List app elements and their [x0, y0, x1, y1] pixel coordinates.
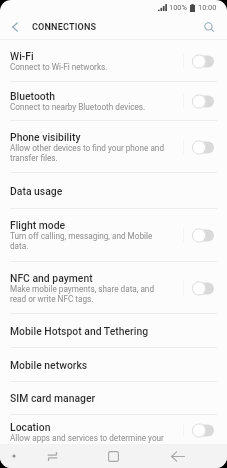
button[interactable]: Phone visibility [183, 135, 214, 159]
staticText: Flight mode [10, 219, 66, 231]
button[interactable]: Search [196, 14, 222, 40]
staticText: Bluetooth [10, 90, 55, 102]
button[interactable]: SIM card manager [0, 382, 227, 414]
staticText: Data usage [10, 185, 63, 197]
staticText: Location [10, 421, 51, 433]
button[interactable]: NFC and payment [183, 276, 214, 300]
staticText: Turn off calling, messaging, and Mobile … [10, 231, 169, 251]
button[interactable]: Location [183, 418, 214, 442]
button[interactable]: Flight mode [0, 209, 227, 261]
staticText: Mobile networks [10, 359, 88, 371]
button[interactable]: NFC and payment [0, 262, 227, 313]
staticText: NFC and payment [10, 272, 93, 284]
button[interactable]: Navigate up [2, 14, 28, 40]
staticText: Connect to Wi-Fi networks. [10, 62, 108, 72]
button[interactable]: Wi-Fi [183, 49, 214, 73]
button[interactable]: Mobile networks [0, 348, 227, 381]
staticText: Allow other devices to find your phone a… [10, 143, 169, 163]
button[interactable]: Back [166, 444, 190, 468]
button[interactable]: Bluetooth [183, 89, 214, 113]
button[interactable]: Bluetooth [0, 82, 227, 120]
button[interactable]: Mobile Hotspot and Tethering [0, 314, 227, 347]
button[interactable]: Flight mode [183, 223, 214, 247]
button[interactable]: Location [0, 415, 227, 444]
staticText: Wi-Fi [10, 50, 34, 62]
button[interactable]: Data usage [0, 173, 227, 208]
button[interactable]: Phone visibility [0, 121, 227, 172]
staticText: Phone visibility [10, 131, 81, 143]
staticText: SIM card manager [10, 392, 96, 404]
staticText: Make mobile payments, share data, and re… [10, 284, 169, 304]
staticText: Allow apps and services to determine you… [10, 433, 169, 444]
staticText: Connect to nearby Bluetooth devices. [10, 102, 146, 112]
staticText: 10:00 [198, 3, 217, 12]
staticText: Mobile Hotspot and Tethering [10, 325, 149, 337]
button[interactable]: Wi-Fi [0, 40, 227, 81]
button[interactable]: Recent apps [40, 444, 64, 468]
staticText: CONNECTIONS [32, 22, 97, 33]
staticText: 100% [169, 3, 187, 12]
button[interactable]: Home [101, 444, 125, 468]
